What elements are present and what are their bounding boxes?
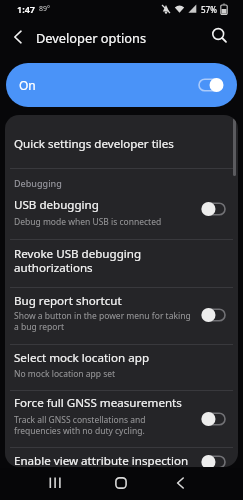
button[interactable] bbox=[5, 169, 238, 239]
staticText: Track all GNSS constellations and bbox=[14, 414, 146, 426]
button[interactable] bbox=[49, 477, 62, 489]
button[interactable] bbox=[176, 477, 185, 489]
staticText: frequencies with no duty cycling. bbox=[14, 425, 145, 437]
button[interactable] bbox=[200, 454, 228, 467]
button[interactable] bbox=[200, 201, 228, 217]
button[interactable] bbox=[5, 391, 238, 447]
button[interactable] bbox=[5, 288, 238, 344]
staticText: Developer options bbox=[36, 29, 147, 46]
staticText: a bug report bbox=[14, 321, 64, 333]
button[interactable] bbox=[5, 448, 238, 462]
button[interactable] bbox=[12, 30, 24, 44]
staticText: Enable view attribute inspection bbox=[14, 453, 189, 467]
button[interactable]: On bbox=[6, 63, 237, 107]
button[interactable] bbox=[200, 411, 228, 427]
button[interactable] bbox=[5, 115, 238, 168]
staticText: Show a button in the power menu for taki… bbox=[14, 310, 191, 322]
staticText: Select mock location app bbox=[14, 350, 150, 366]
staticText: Revoke USB debugging bbox=[14, 246, 142, 262]
staticText: Debug mode when USB is connected bbox=[14, 216, 162, 228]
button[interactable] bbox=[5, 240, 238, 287]
staticText: No mock location app set bbox=[14, 368, 116, 380]
staticText: USB debugging bbox=[14, 197, 99, 213]
button[interactable] bbox=[5, 345, 238, 390]
staticText: Force full GNSS measurements bbox=[14, 395, 182, 411]
staticText: 57% bbox=[201, 4, 217, 15]
button[interactable] bbox=[115, 477, 127, 489]
button[interactable] bbox=[197, 77, 225, 93]
staticText: 89° bbox=[39, 4, 51, 14]
staticText: Quick settings developer tiles bbox=[14, 136, 174, 152]
staticText: Debugging bbox=[14, 177, 62, 189]
staticText: On bbox=[19, 77, 36, 93]
button[interactable] bbox=[200, 307, 228, 323]
staticText: authorizations bbox=[14, 260, 93, 276]
staticText: Bug report shortcut bbox=[14, 293, 122, 309]
button[interactable] bbox=[211, 27, 229, 45]
staticText: 1:47 bbox=[17, 3, 35, 15]
